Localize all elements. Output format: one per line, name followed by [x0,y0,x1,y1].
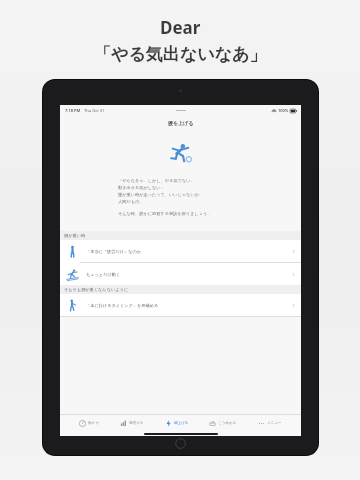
button[interactable]: 「本当に『疲労だけ』なのか [60,240,301,262]
staticText: 人間だもの。 [118,199,144,204]
button[interactable]: 「走に行けるタイミング」を見極める [60,294,301,316]
staticText: 動き出せる気がしない」 [118,185,165,190]
button[interactable]: 腰上げる [163,419,191,428]
staticText: 腰上げる [174,421,189,426]
staticText: 「走に行けるタイミング」を見極める [86,303,159,308]
staticText: メニュー [267,421,282,426]
button[interactable]: 整理する [118,419,146,428]
staticText: 脚が重い時 [64,233,86,238]
staticText: そんな時、静かに回避する秘訣を探りましょう。 [118,211,212,216]
button[interactable]: ちょっとだけ動く [60,263,301,285]
staticText: 腰が重い時があったって、いいじゃないか。 [118,192,204,197]
staticText: Dear [160,16,201,39]
staticText: 腰を上げる [168,120,194,126]
staticText: 「やらなきゃ。しかし、やる気でない。 [118,178,195,183]
button[interactable]: 動かす [77,419,101,428]
staticText: 動かす [88,421,99,426]
staticText: 整理する [129,421,144,426]
staticText: 100% [278,108,289,113]
staticText: そもそも脚が重くならないように [64,287,129,292]
button[interactable]: メニュー [256,419,284,428]
button[interactable]: こう休める [207,419,239,428]
staticText: こう休める [218,421,237,426]
staticText: 7:18 PM [65,108,81,113]
staticText: Thu Oct 31 [84,108,105,113]
staticText: 「やる気出ないなあ」 [94,44,267,65]
staticText: 「本当に『疲労だけ』なのか [86,249,142,254]
staticText: ちょっとだけ動く [86,272,121,277]
